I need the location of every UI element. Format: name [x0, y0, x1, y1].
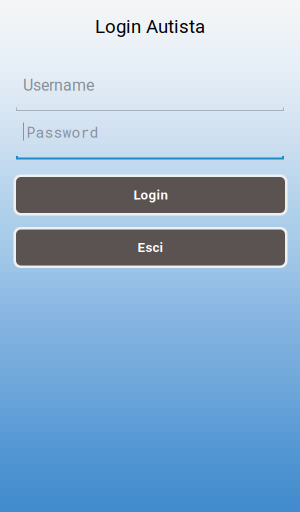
staticText: Password	[26, 122, 98, 142]
staticText: Esci	[137, 240, 163, 255]
button[interactable]: Login	[13, 174, 287, 215]
button[interactable]: Username	[16, 76, 284, 111]
staticText: Login	[133, 187, 167, 203]
button[interactable]: Password	[16, 122, 284, 159]
staticText: Username	[23, 76, 94, 95]
button[interactable]: Esci	[13, 227, 287, 268]
staticText: Login Autista	[95, 16, 205, 37]
